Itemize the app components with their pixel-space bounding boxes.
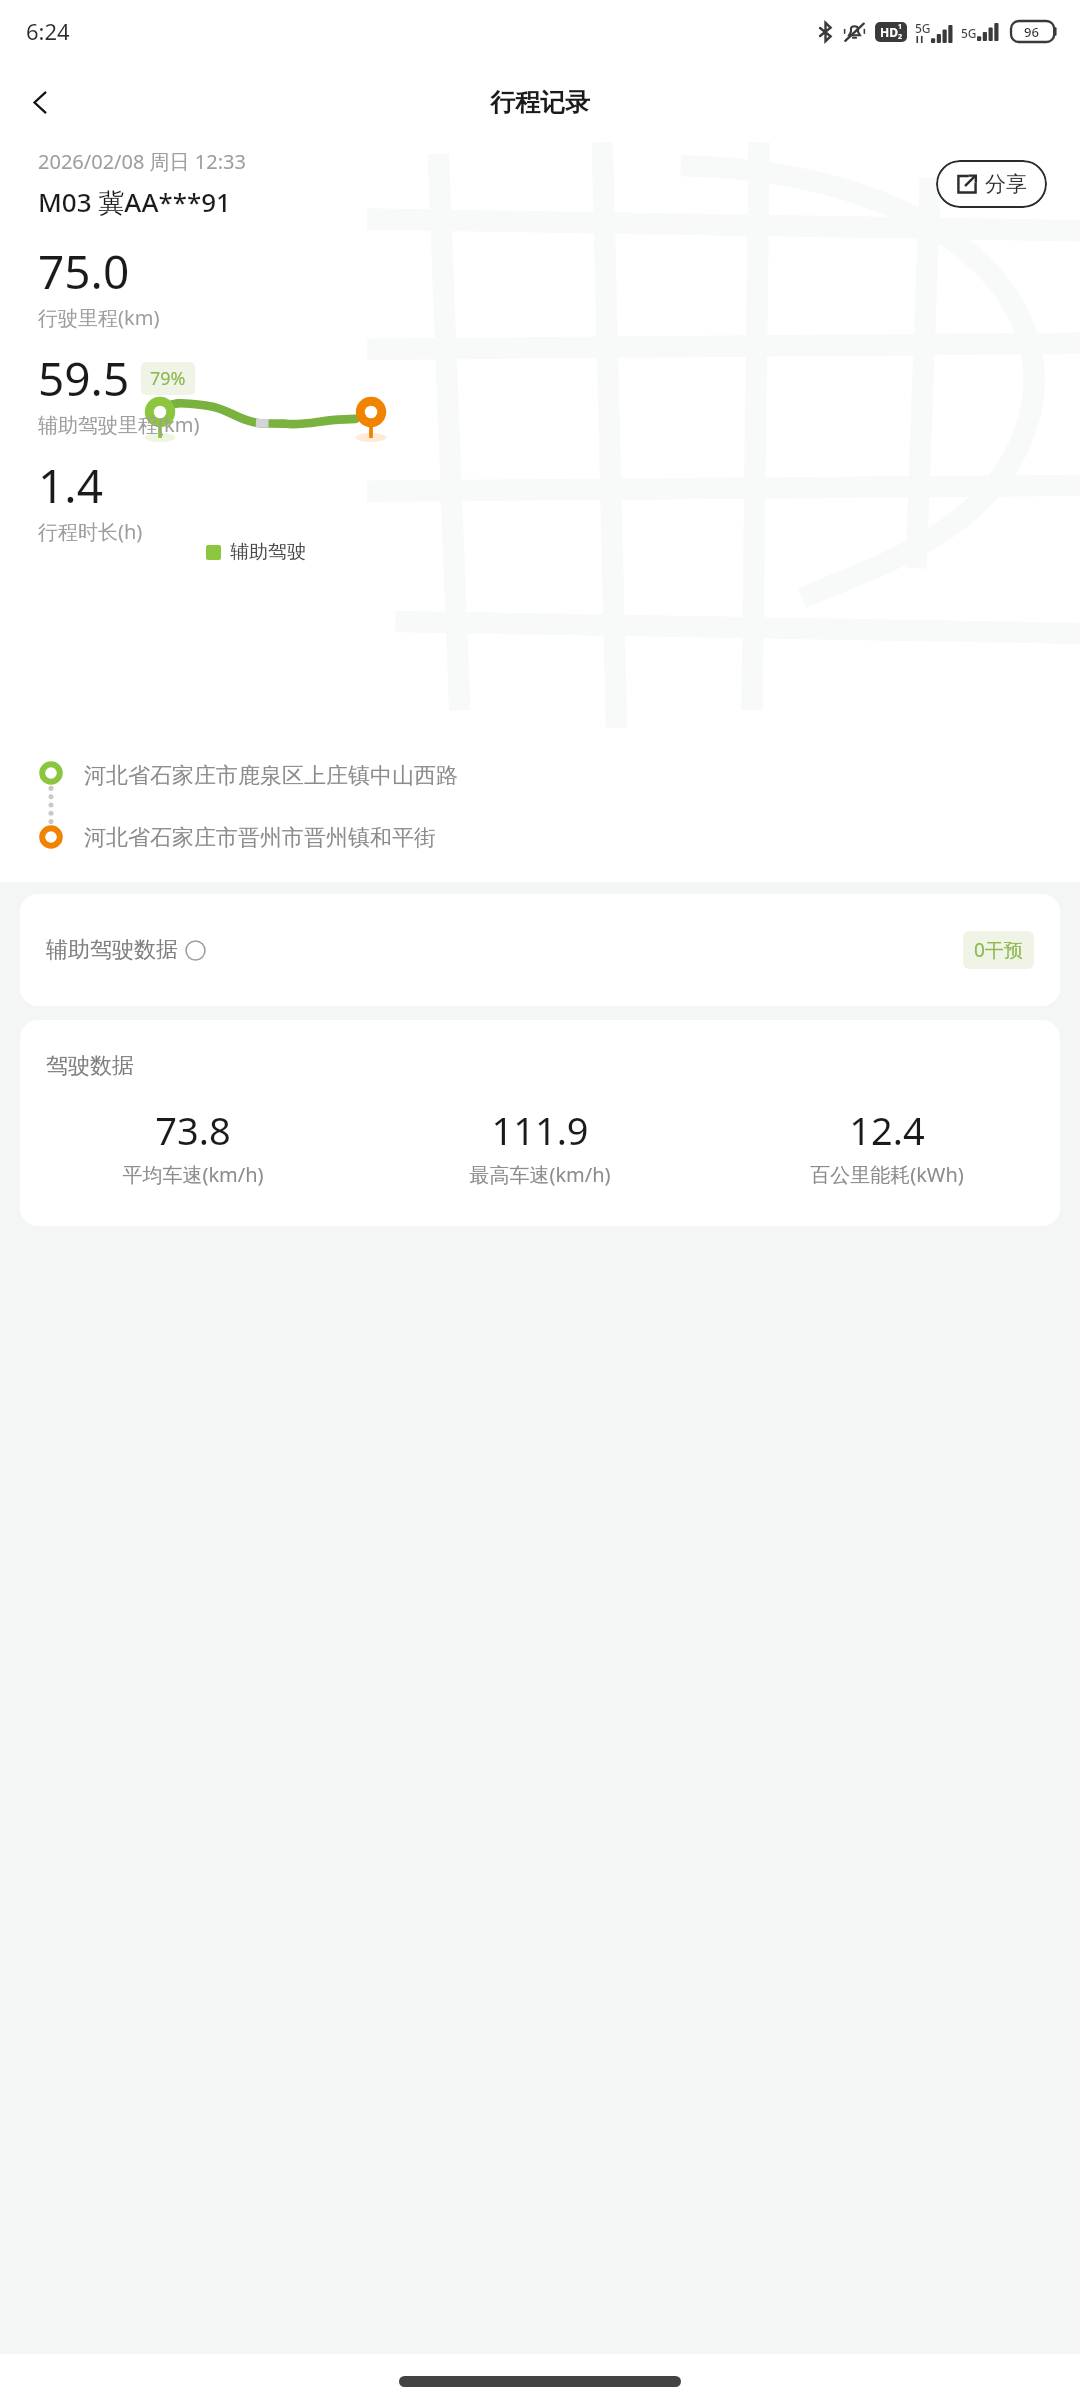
staticText: 辅助驾驶数据 (46, 936, 178, 964)
staticText: 行程时长(h) (38, 518, 143, 545)
staticText: 行程记录 (490, 87, 590, 118)
staticText: 5G (961, 25, 977, 41)
staticText: 111.9 (491, 1104, 589, 1156)
staticText: 5G (915, 20, 931, 36)
staticText: 2 (898, 32, 903, 42)
staticText: 1 (898, 22, 903, 32)
staticText: 河北省石家庄市晋州市晋州镇和平街 (84, 824, 436, 852)
staticText: 百公里能耗(kWh) (810, 1161, 964, 1188)
staticText: 辅助驾驶 (230, 540, 306, 564)
button[interactable]: Back (12, 74, 68, 130)
staticText: 12.4 (849, 1104, 925, 1156)
button[interactable]: 分享 (936, 160, 1047, 208)
staticText: 1.4 (38, 454, 103, 517)
staticText: 96 (1024, 23, 1039, 41)
staticText: 59.5 (38, 347, 130, 410)
staticText: 6:24 (26, 16, 70, 46)
staticText: 75.0 (38, 240, 130, 303)
staticText: 驾驶数据 (46, 1052, 134, 1080)
staticText: 行驶里程(km) (38, 304, 160, 331)
staticText: 79% (150, 366, 186, 391)
staticText: HD (880, 24, 898, 40)
staticText: 平均车速(km/h) (122, 1161, 264, 1188)
staticText: 河北省石家庄市鹿泉区上庄镇中山西路 (84, 762, 458, 790)
staticText: 分享 (985, 171, 1027, 197)
staticText: M03 冀AA***91 (38, 184, 231, 220)
staticText: 辅助驾驶里程(km) (38, 411, 200, 438)
staticText: 73.8 (155, 1104, 231, 1156)
staticText: 2026/02/08 周日 12:33 (38, 148, 246, 175)
staticText: 0干预 (974, 937, 1023, 963)
button[interactable]: 驾驶数据 (20, 1020, 1060, 1226)
staticText: 最高车速(km/h) (469, 1161, 611, 1188)
button[interactable]: 辅助驾驶数据 (20, 894, 1060, 1006)
